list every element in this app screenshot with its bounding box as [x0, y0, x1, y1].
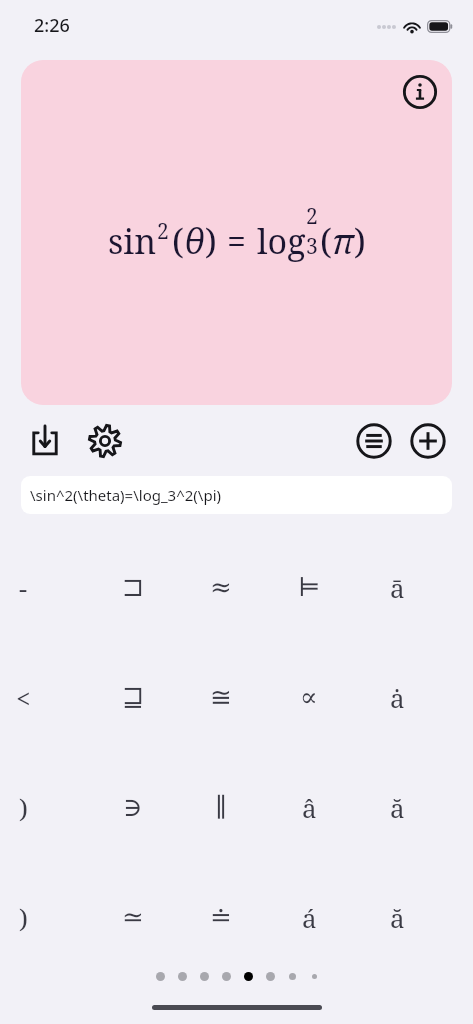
staticText: ≅	[210, 682, 232, 712]
button[interactable]: ∝	[265, 642, 353, 752]
staticText: )	[19, 790, 28, 825]
button[interactable]: ∋	[89, 752, 177, 862]
staticText: ȧ	[390, 680, 405, 715]
staticText: (	[320, 218, 332, 264]
staticText: log	[257, 218, 306, 264]
button[interactable]: Settings	[82, 418, 128, 464]
button[interactable]: Information	[21, 60, 452, 405]
staticText: sin	[108, 218, 157, 264]
button[interactable]: \sin^2(\theta)=\log_3^2(\pi)	[21, 476, 452, 514]
staticText: )	[354, 218, 366, 264]
button[interactable]: ⊨	[265, 532, 353, 642]
staticText: ∥	[215, 792, 228, 822]
staticText: ≐	[210, 902, 232, 932]
button[interactable]: Add	[405, 418, 451, 464]
button[interactable]: List	[351, 418, 397, 464]
button[interactable]: ≅	[177, 642, 265, 752]
staticText: ∋	[123, 792, 143, 822]
staticText: á	[302, 900, 317, 935]
staticText: ă	[390, 790, 405, 825]
staticText: )	[205, 218, 217, 264]
button[interactable]: ≐	[177, 862, 265, 972]
staticText: ă	[390, 900, 405, 935]
button[interactable]: ⊐	[89, 532, 177, 642]
button[interactable]: ‐	[0, 532, 67, 642]
staticText: 2:26	[34, 13, 70, 38]
staticText: ‐	[19, 570, 28, 605]
staticText: 3	[306, 231, 318, 260]
button[interactable]: ă	[353, 862, 441, 972]
button[interactable]: Information	[401, 73, 439, 111]
staticText: ā	[390, 570, 405, 605]
button[interactable]: ∥	[177, 752, 265, 862]
staticText: 2	[157, 216, 169, 245]
staticText: ≃	[122, 902, 144, 932]
button[interactable]: â	[265, 752, 353, 862]
button[interactable]: á	[265, 862, 353, 972]
staticText: ⊨	[298, 572, 321, 602]
staticText: ⊐	[122, 572, 145, 602]
staticText: ≈	[210, 572, 232, 602]
staticText: ∝	[300, 682, 318, 712]
staticText: â	[302, 790, 317, 825]
button[interactable]: ȧ	[353, 642, 441, 752]
staticText: =	[227, 218, 247, 264]
button[interactable]: )	[0, 862, 67, 972]
staticText: (	[172, 218, 184, 264]
staticText: 2	[306, 201, 318, 230]
staticText: ⊒	[122, 682, 145, 712]
button[interactable]: ă	[353, 752, 441, 862]
button[interactable]: ⊒	[89, 642, 177, 752]
button[interactable]: ā	[353, 532, 441, 642]
staticText: θ	[184, 218, 205, 264]
button[interactable]: )	[0, 752, 67, 862]
staticText: <	[16, 680, 31, 715]
button[interactable]: <	[0, 642, 67, 752]
staticText: \sin^2(\theta)=\log_3^2(\pi)	[30, 485, 222, 505]
staticText: π	[332, 218, 354, 264]
button[interactable]: ≈	[177, 532, 265, 642]
button[interactable]: ≃	[89, 862, 177, 972]
button[interactable]: Download	[22, 418, 68, 464]
staticText: )	[19, 900, 28, 935]
